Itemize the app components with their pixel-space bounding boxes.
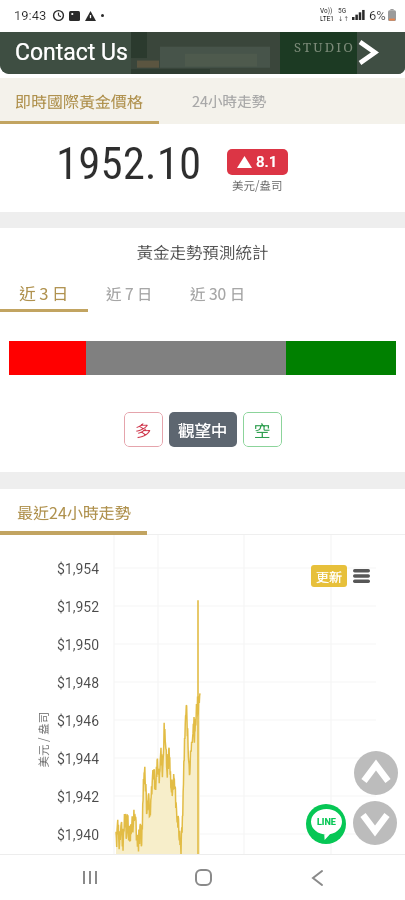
staticText: 美元/盎司 <box>232 177 283 194</box>
button[interactable]: Home <box>179 855 227 900</box>
button[interactable]: 近 3 日 <box>0 274 88 312</box>
button[interactable]: 近 30 日 <box>170 274 265 312</box>
staticText: $1,950 <box>57 637 100 653</box>
button[interactable]: 近 7 日 <box>88 274 170 312</box>
staticText: $1,940 <box>57 827 100 843</box>
staticText: 1952.10 <box>56 137 202 190</box>
other: Open Contact Us <box>360 42 375 63</box>
button[interactable]: 觀望中 <box>169 412 237 447</box>
staticText: 觀望中 <box>178 418 228 442</box>
staticText: 最近24小時走勢 <box>17 500 131 523</box>
staticText: Vo)) <box>320 7 333 15</box>
button[interactable]: 最近24小時走勢 <box>0 489 405 535</box>
staticText: LINE <box>317 817 336 828</box>
staticText: ↓↑ <box>338 15 349 23</box>
staticText: $1,948 <box>57 675 100 691</box>
staticText: 6% <box>369 8 386 23</box>
staticText: 近 3 日 <box>19 281 69 305</box>
staticText: 美元 / 盎司 <box>34 711 51 767</box>
button[interactable]: Recents <box>66 855 114 900</box>
staticText: $1,952 <box>57 599 100 615</box>
staticText: $1,954 <box>57 561 100 577</box>
staticText: $1,946 <box>57 713 100 729</box>
staticText: 多 <box>135 418 152 442</box>
staticText: Contact Us <box>15 39 128 66</box>
staticText: 黃金走勢預測統計 <box>0 240 405 264</box>
staticText: 空 <box>254 418 271 442</box>
staticText: 即時國際黃金價格 <box>15 89 144 112</box>
staticText: $1,942 <box>57 789 100 805</box>
staticText: 更新 <box>316 567 343 586</box>
staticText: $1,944 <box>57 751 100 767</box>
button[interactable]: Scroll down <box>353 801 397 845</box>
staticText: 近 30 日 <box>190 282 246 304</box>
button[interactable]: 空 <box>243 412 282 447</box>
staticText: 24小時走勢 <box>192 90 267 111</box>
button[interactable]: 即時國際黃金價格 <box>0 78 159 124</box>
staticText: 8.1 <box>256 153 278 171</box>
staticText: 近 7 日 <box>106 282 153 304</box>
staticText: 19:43 <box>14 8 47 23</box>
button[interactable]: LINE <box>306 804 346 844</box>
button[interactable]: STUDIO <box>0 32 405 74</box>
button[interactable]: 更新 <box>311 565 347 587</box>
staticText: STUDIO <box>294 38 356 56</box>
button[interactable]: Chart menu <box>353 569 370 583</box>
staticText: LTE1 <box>320 15 335 23</box>
button[interactable]: Back <box>293 855 341 900</box>
staticText: 5G <box>338 7 347 15</box>
button[interactable]: 24小時走勢 <box>159 78 299 124</box>
button[interactable]: 多 <box>124 412 163 447</box>
button[interactable]: 8.1 <box>227 149 288 175</box>
button[interactable]: Scroll up <box>354 751 398 795</box>
